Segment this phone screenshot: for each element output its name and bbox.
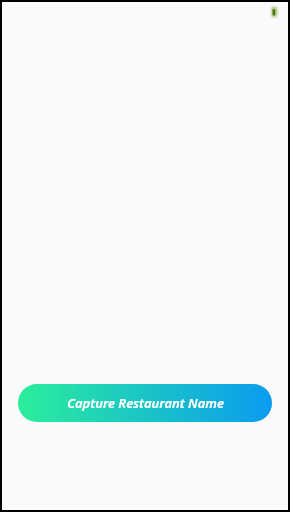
button[interactable]: Capture Restaurant Name — [18, 384, 272, 422]
other: Status indicator — [270, 5, 288, 19]
staticText: Capture Restaurant Name — [67, 394, 224, 412]
